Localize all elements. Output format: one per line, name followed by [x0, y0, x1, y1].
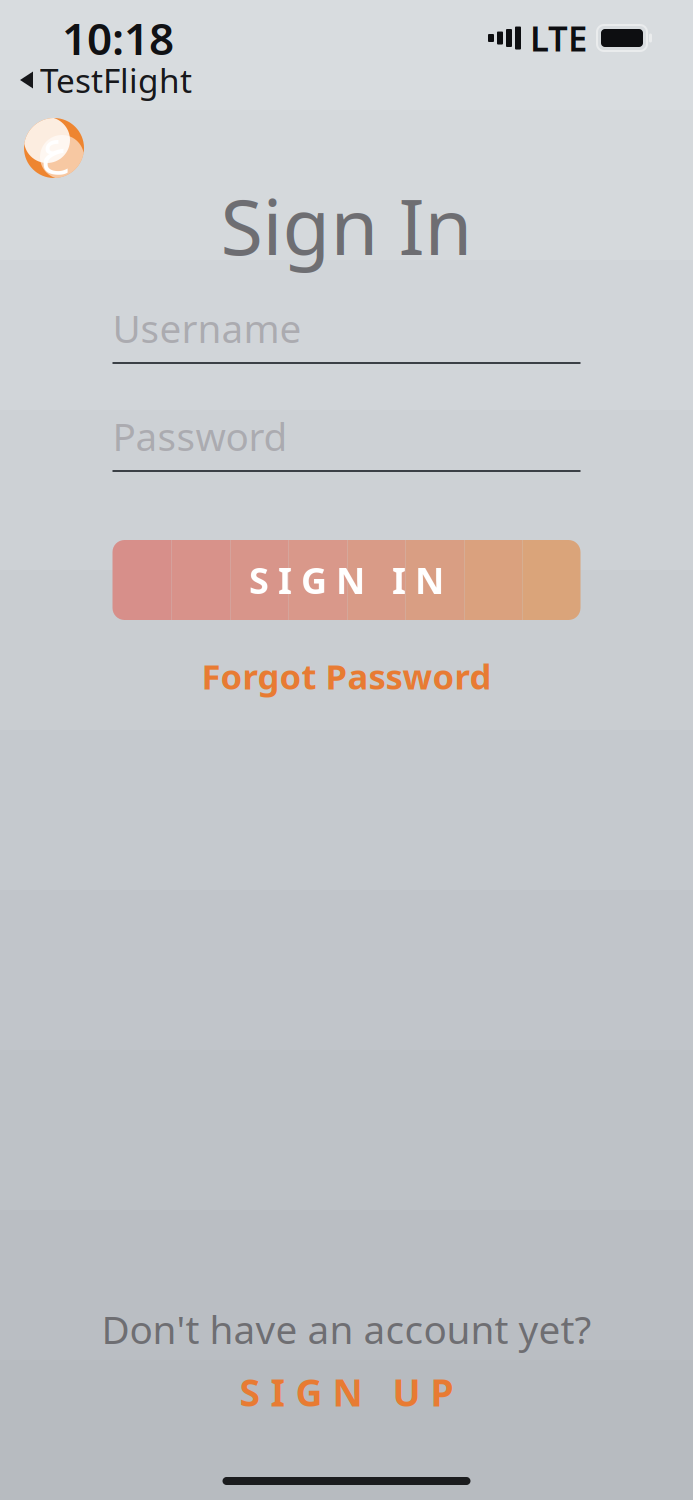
staticText: TestFlight	[40, 58, 192, 102]
staticText: Username	[112, 302, 301, 354]
button[interactable]: TestFlight	[0, 64, 693, 96]
staticText: Don't have an account yet?	[101, 1303, 591, 1355]
staticText: S I G N U P	[239, 1367, 453, 1417]
staticText: Forgot Password	[201, 653, 491, 699]
staticText: 10:18	[62, 9, 174, 67]
button[interactable]: Forgot Password	[112, 650, 580, 702]
button[interactable]: S I G N I N	[112, 540, 580, 620]
button[interactable]: S I G N U P	[146, 1367, 546, 1417]
staticText: Sign In	[220, 174, 472, 276]
staticText: Password	[112, 410, 287, 462]
staticText: S I G N I N	[249, 556, 444, 604]
staticText: LTE	[530, 15, 587, 61]
staticText: ع	[40, 122, 67, 174]
